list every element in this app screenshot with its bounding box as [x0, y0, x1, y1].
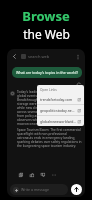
staticText: What are today's topics in the world?: [16, 70, 78, 75]
staticText: geopoliticstoday.news...: [40, 108, 77, 113]
staticText: the Web: [23, 26, 70, 42]
button[interactable]: What are today's topics in the world?: [12, 67, 82, 78]
staticText: Today's leading stories cover a mix of g…: [17, 90, 82, 126]
button[interactable]: Regenerate: [75, 81, 82, 88]
button[interactable]: trendsfortoday.com: [37, 94, 84, 104]
button[interactable]: More: [50, 171, 58, 179]
button[interactable]: Back: [10, 52, 19, 61]
button[interactable]: Copy: [17, 171, 25, 179]
staticText: search.web: [28, 54, 73, 59]
staticText: Space Tourism Boom: The first commercial…: [17, 128, 82, 148]
button[interactable]: Like: [28, 171, 36, 179]
button[interactable]: More options: [73, 52, 82, 61]
staticText: trendsfortoday.com: [40, 97, 77, 102]
staticText: Open Links: [40, 88, 57, 92]
button[interactable]: Write a message: [10, 184, 68, 195]
staticText: Browse: [22, 7, 70, 25]
button[interactable]: Dislike: [39, 171, 47, 179]
button[interactable]: geopoliticstoday.news...: [37, 105, 84, 115]
button[interactable]: globalnewsworldwide.c...: [37, 116, 84, 126]
staticText: globalnewsworldwide.c...: [40, 119, 77, 124]
staticText: Write a message: [21, 187, 50, 192]
button[interactable]: Send: [71, 184, 82, 195]
